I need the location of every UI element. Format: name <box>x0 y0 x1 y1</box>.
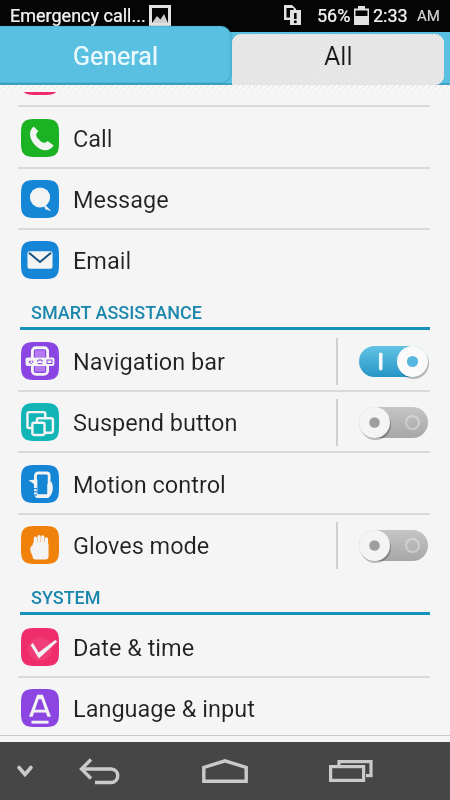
staticText: General <box>73 42 159 71</box>
staticText: Message <box>73 186 169 214</box>
staticText: Language & input <box>73 695 255 723</box>
button[interactable]: Switch off <box>359 407 428 438</box>
staticText: AM <box>417 7 440 25</box>
staticText: All <box>324 42 353 71</box>
button[interactable]: Suspend button <box>0 391 450 453</box>
button[interactable]: Recent apps <box>322 742 380 800</box>
button[interactable]: Switch off <box>359 530 428 561</box>
button[interactable]: All <box>232 32 444 85</box>
button[interactable]: Navigation bar <box>0 330 450 392</box>
staticText: SMART ASSISTANCE <box>31 302 202 323</box>
staticText: Gloves mode <box>73 532 210 560</box>
staticText: Emergency call... <box>10 5 146 26</box>
button[interactable]: Motion control <box>0 453 450 515</box>
staticText: Do not disturb <box>73 63 221 91</box>
button[interactable]: Back <box>72 742 130 800</box>
button[interactable]: Message <box>0 168 450 230</box>
staticText: SYSTEM <box>31 587 101 608</box>
button[interactable]: General <box>0 32 231 85</box>
staticText: Suspend button <box>73 409 238 437</box>
staticText: Motion control <box>73 471 226 499</box>
button[interactable]: Date & time <box>0 616 450 678</box>
button[interactable]: Gloves mode <box>0 514 450 576</box>
button[interactable]: Home <box>196 742 254 800</box>
staticText: 56% <box>317 5 351 26</box>
staticText: Navigation bar <box>73 348 226 376</box>
staticText: Call <box>73 125 113 153</box>
button[interactable]: Email <box>0 229 450 291</box>
button[interactable]: Switch on <box>359 346 428 377</box>
button[interactable]: Call <box>0 107 450 169</box>
button[interactable] <box>232 34 444 85</box>
button[interactable]: Do not disturb <box>0 45 450 107</box>
staticText: Date & time <box>73 634 195 662</box>
button[interactable]: Language & input <box>0 677 450 735</box>
staticText: 2:33 <box>373 5 408 26</box>
button[interactable]: Hide navigation bar <box>0 742 50 800</box>
staticText: Email <box>73 247 132 275</box>
